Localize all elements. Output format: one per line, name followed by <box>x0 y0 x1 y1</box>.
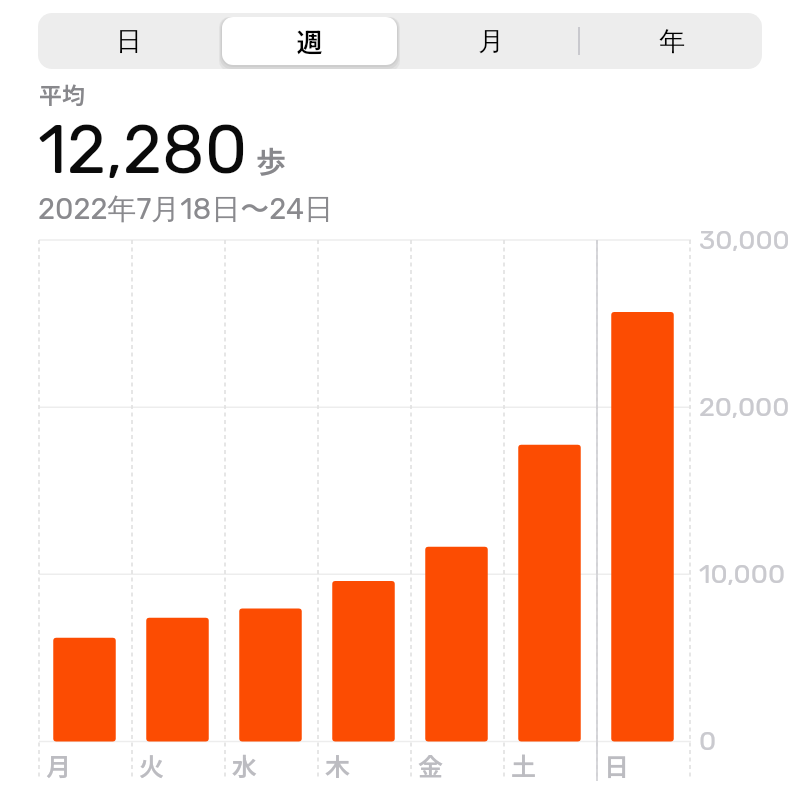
staticText: 月 <box>478 25 504 58</box>
button[interactable]: 火 <box>132 240 225 781</box>
button[interactable]: 日 <box>597 240 690 781</box>
staticText: 2022年7月18日〜24日 <box>38 191 333 228</box>
staticText: 月 <box>46 747 72 783</box>
staticText: 0 <box>699 725 717 757</box>
staticText: 土 <box>511 747 537 783</box>
button[interactable]: 月 <box>400 13 581 69</box>
staticText: 週 <box>296 22 323 60</box>
button[interactable]: 年 <box>581 13 762 69</box>
staticText: 20,000 <box>699 391 790 423</box>
staticText: 金 <box>418 747 444 783</box>
staticText: 年 <box>659 25 685 58</box>
staticText: 12,280 <box>38 110 248 189</box>
button[interactable]: 週 <box>219 13 400 69</box>
staticText: 日 <box>116 25 142 58</box>
staticText: 歩 <box>256 138 286 181</box>
staticText: 火 <box>139 747 165 783</box>
button[interactable]: 金 <box>411 240 504 781</box>
staticText: 平均 <box>39 77 85 110</box>
staticText: 30,000 <box>699 224 790 256</box>
staticText: 木 <box>325 747 351 783</box>
button[interactable]: 日 <box>38 13 219 69</box>
button[interactable]: 水 <box>225 240 318 781</box>
staticText: 水 <box>232 747 258 783</box>
button[interactable]: 土 <box>504 240 597 781</box>
button[interactable]: 木 <box>318 240 411 781</box>
staticText: 日 <box>604 747 630 783</box>
staticText: 10,000 <box>699 558 786 590</box>
button[interactable]: 月 <box>39 240 132 781</box>
